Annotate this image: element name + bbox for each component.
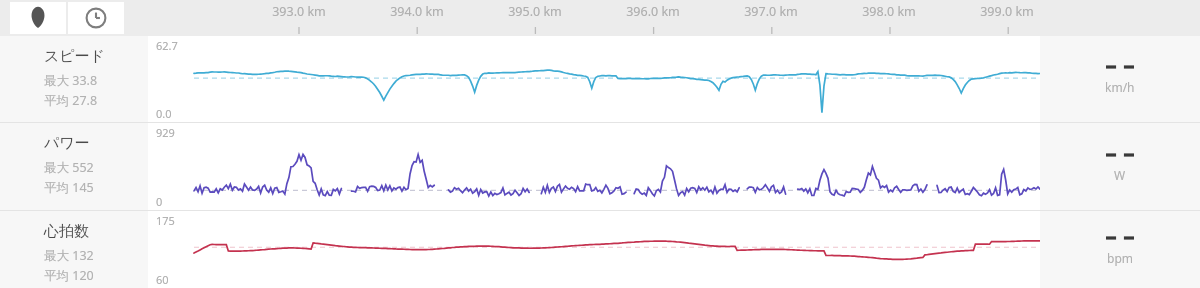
staticText: W [1114,167,1126,183]
staticText: 397.0 km [729,3,813,20]
staticText: パワー [44,134,90,153]
staticText: 0.0 [156,106,172,121]
staticText: 394.0 km [375,3,459,20]
staticText: 心拍数 [44,222,89,241]
button[interactable]: スピード [0,36,1200,122]
staticText: 平均 27.8 [44,92,98,109]
staticText: 平均 120 [44,267,94,284]
staticText: 395.0 km [493,3,577,20]
staticText: スピード [44,47,106,66]
button[interactable]: パワー [0,123,1200,210]
button[interactable]: 心拍数 [0,211,1200,288]
staticText: 396.0 km [611,3,695,20]
staticText: 平均 145 [44,179,94,196]
staticText: 62.7 [156,38,178,53]
staticText: 398.0 km [847,3,931,20]
staticText: 60 [156,272,169,287]
staticText: bpm [1107,250,1133,266]
staticText: 929 [156,125,175,140]
button[interactable]: Map view [10,2,66,34]
staticText: 最大 132 [44,247,94,264]
staticText: 175 [156,213,175,228]
staticText: 0 [156,194,163,209]
staticText: 399.0 km [965,3,1049,20]
staticText: 最大 33.8 [44,72,98,89]
staticText: 393.0 km [257,3,341,20]
staticText: km/h [1105,79,1135,95]
button[interactable]: Time view [68,2,124,34]
staticText: 最大 552 [44,159,94,176]
